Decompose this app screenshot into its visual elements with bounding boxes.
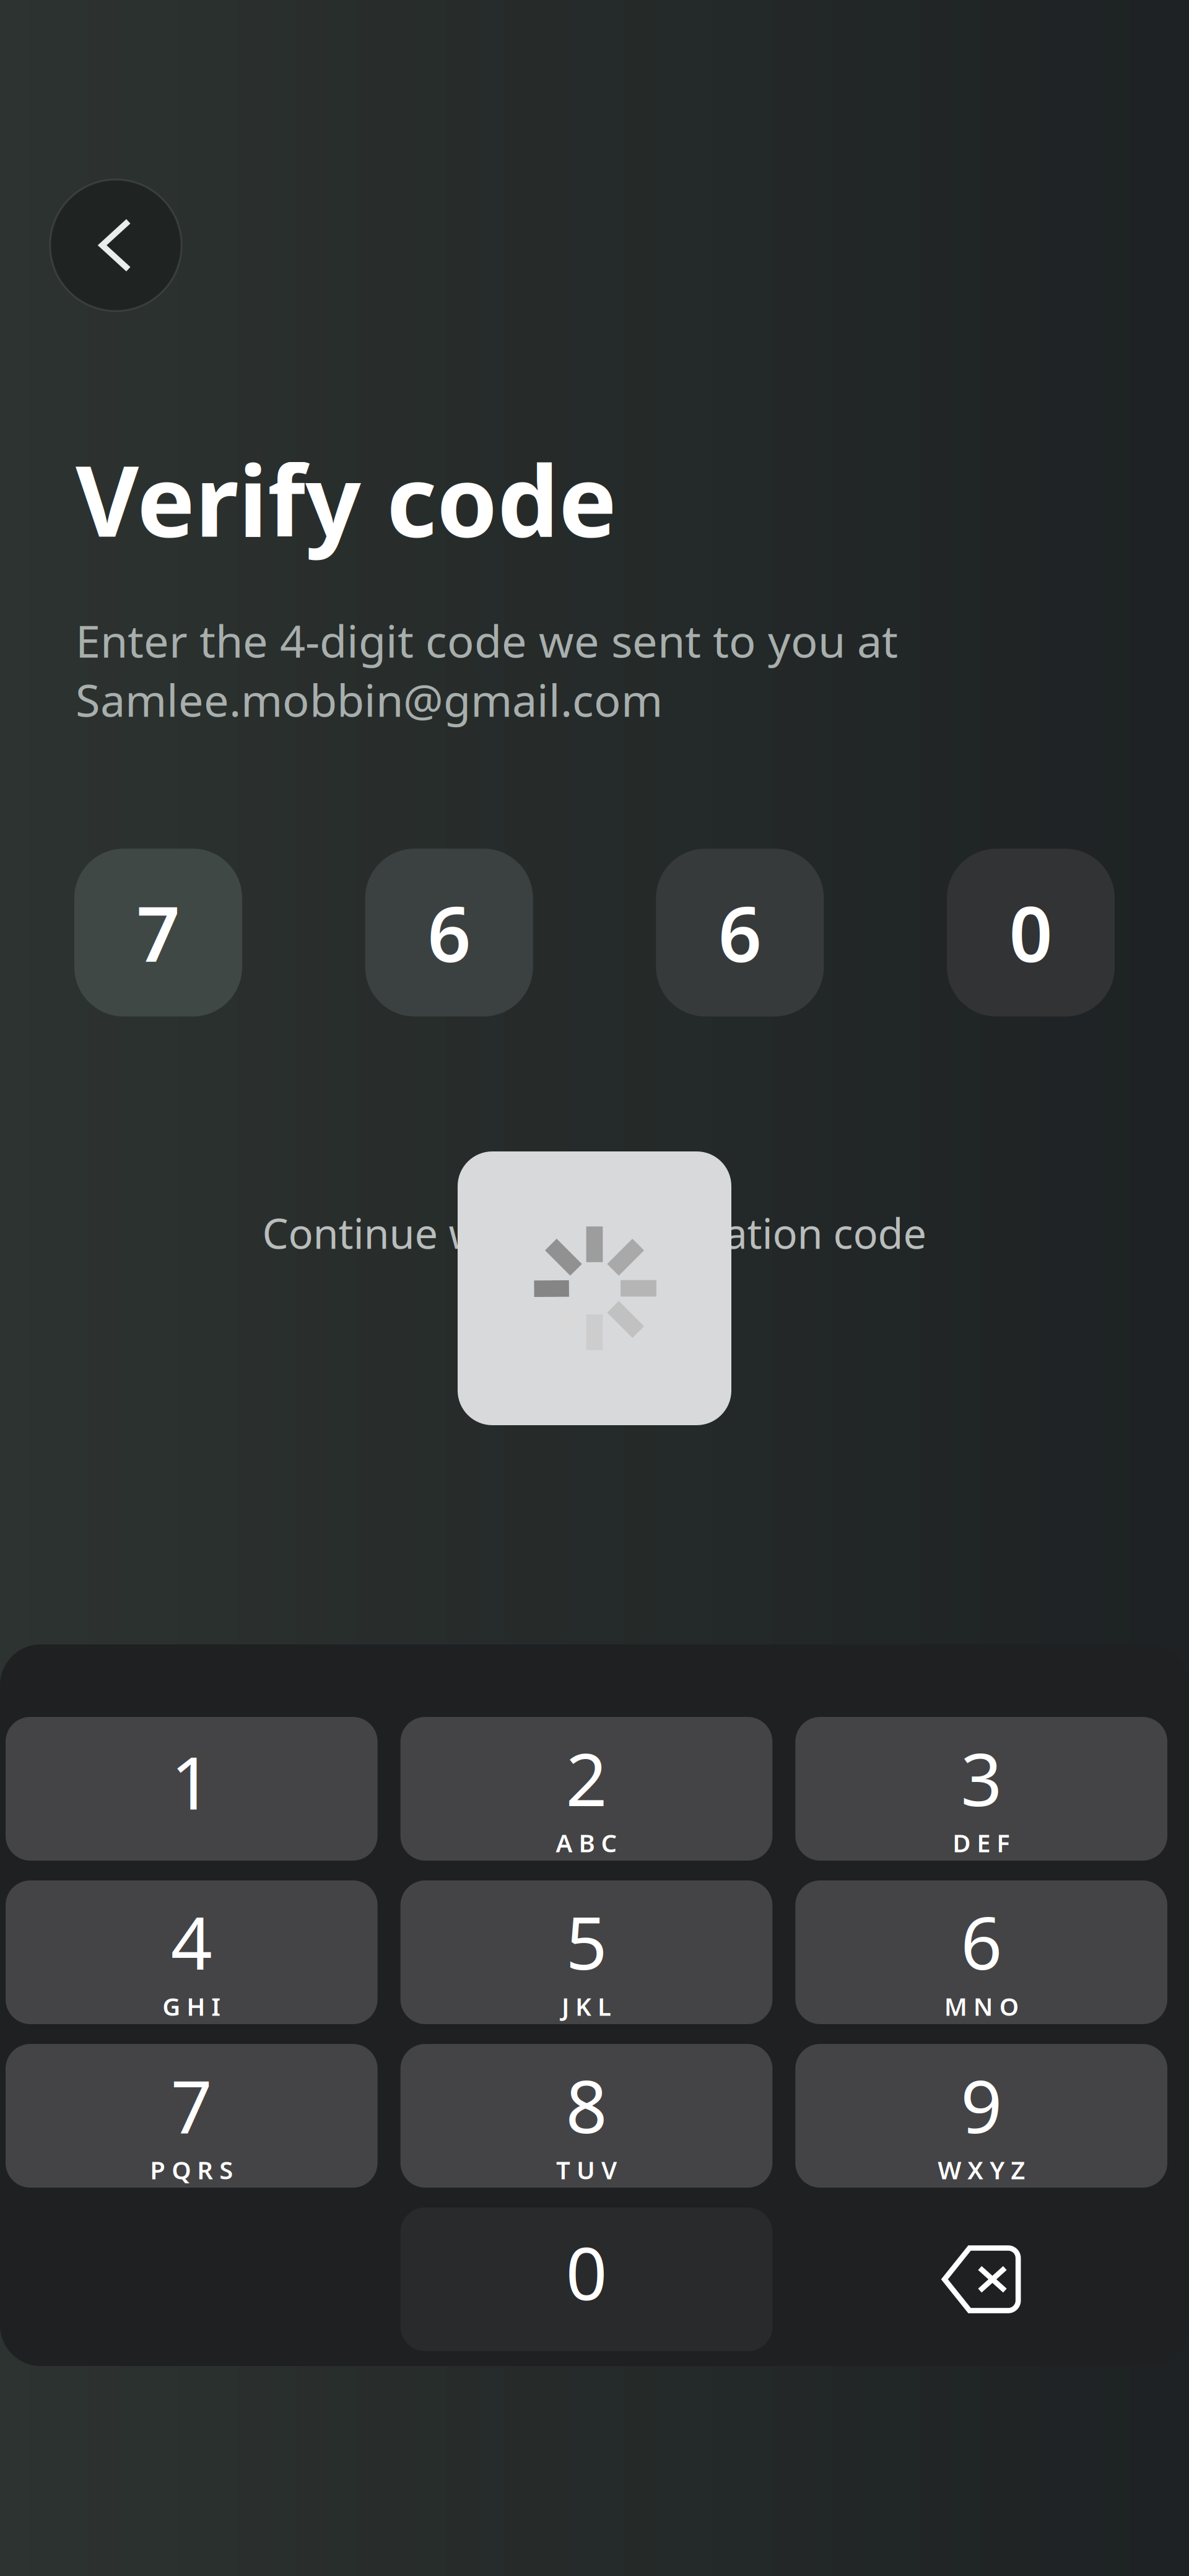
button[interactable]: 6 <box>795 1880 1167 2024</box>
staticText: W X Y Z <box>938 2153 1025 2186</box>
staticText: Continue without verification code <box>262 1205 927 1260</box>
button[interactable]: Delete <box>795 2207 1167 2351</box>
staticText: 7 <box>137 882 180 983</box>
staticText: G H I <box>162 1990 221 2023</box>
staticText: J K L <box>562 1990 611 2023</box>
button[interactable]: 2 <box>400 1717 772 1861</box>
staticText: 7 <box>171 2057 212 2153</box>
button[interactable]: Continue without verification code <box>0 1205 1189 1260</box>
staticText: Verify code <box>76 434 617 564</box>
staticText: 9 <box>961 2057 1002 2153</box>
button[interactable]: 8 <box>400 2044 772 2188</box>
button[interactable]: 7 <box>6 2044 378 2188</box>
staticText: M N O <box>944 1990 1019 2023</box>
button[interactable]: 4 <box>6 1880 378 2024</box>
staticText: A B C <box>556 1826 617 1859</box>
staticText: 0 <box>1009 882 1052 983</box>
staticText: 4 <box>171 1893 212 1990</box>
staticText: 6 <box>718 882 762 983</box>
staticText: 2 <box>566 1730 607 1826</box>
button[interactable]: 1 <box>6 1717 378 1861</box>
staticText: D E F <box>953 1826 1010 1859</box>
staticText: P Q R S <box>150 2153 233 2186</box>
staticText: 1 <box>171 1733 212 1830</box>
button[interactable]: Back <box>50 180 181 311</box>
staticText: 8 <box>566 2057 607 2153</box>
staticText: 3 <box>961 1730 1002 1826</box>
button[interactable]: 3 <box>795 1717 1167 1861</box>
staticText: 6 <box>427 882 471 983</box>
staticText: 6 <box>961 1893 1002 1990</box>
button[interactable]: 5 <box>400 1880 772 2024</box>
staticText: 0 <box>566 2224 607 2320</box>
button[interactable]: 0 <box>400 2207 772 2351</box>
staticText: T U V <box>556 2153 617 2186</box>
button[interactable]: 9 <box>795 2044 1167 2188</box>
staticText: Enter the 4-digit code we sent to you at… <box>76 611 898 729</box>
staticText: 5 <box>566 1893 607 1990</box>
